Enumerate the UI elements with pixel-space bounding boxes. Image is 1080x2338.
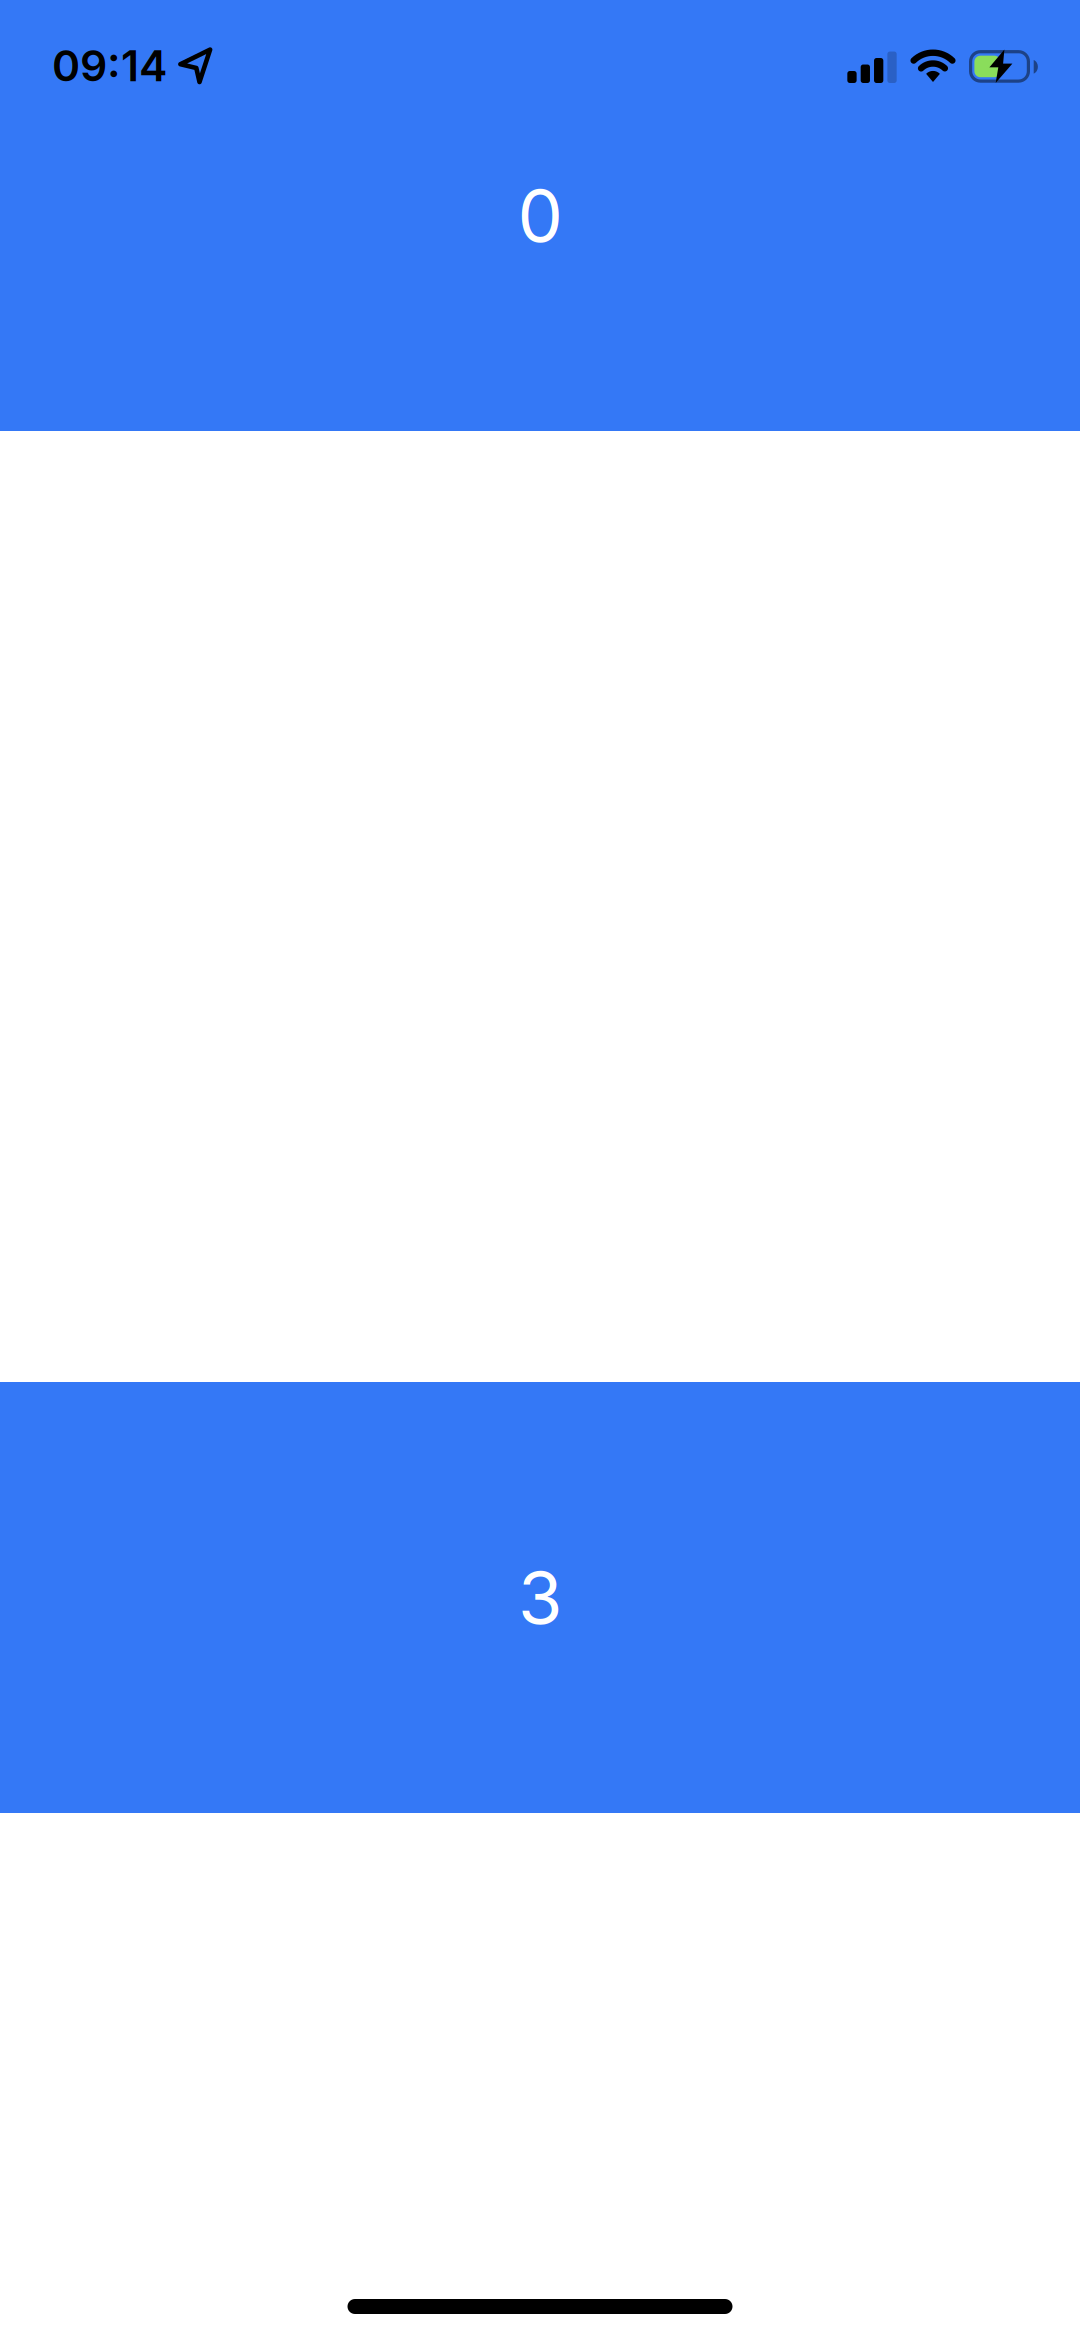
staticText: 0 xyxy=(517,172,562,259)
button[interactable]: 3 xyxy=(0,1382,1080,1813)
staticText: 09:14 xyxy=(52,40,167,92)
staticText: 3 xyxy=(518,1554,562,1641)
button[interactable]: 0 xyxy=(0,0,1080,431)
